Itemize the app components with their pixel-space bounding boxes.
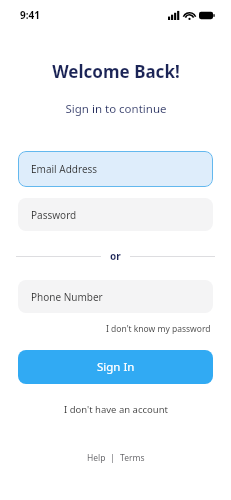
staticText: Help [87, 452, 106, 464]
staticText: 9:41 [20, 8, 40, 22]
staticText: Email Address [31, 162, 98, 176]
staticText: Sign in to continue [65, 101, 167, 117]
button[interactable]: Email Address [18, 151, 213, 187]
staticText: Sign In [97, 359, 135, 375]
button[interactable]: Phone Number [18, 280, 213, 313]
staticText: I don't know my password [106, 323, 211, 335]
button[interactable]: Terms [118, 450, 147, 466]
button[interactable]: Sign In [18, 350, 213, 384]
staticText: Phone Number [31, 290, 103, 304]
staticText: | [108, 452, 118, 464]
button[interactable]: I don't know my password [104, 321, 213, 337]
staticText: Welcome Back! [52, 60, 180, 83]
staticText: or [110, 249, 121, 263]
button[interactable]: Password [18, 198, 213, 231]
button[interactable]: I don't have an account [60, 401, 172, 418]
staticText: Terms [120, 452, 145, 464]
staticText: Password [31, 208, 77, 222]
button[interactable]: Help [85, 450, 108, 466]
staticText: I don't have an account [64, 403, 168, 416]
